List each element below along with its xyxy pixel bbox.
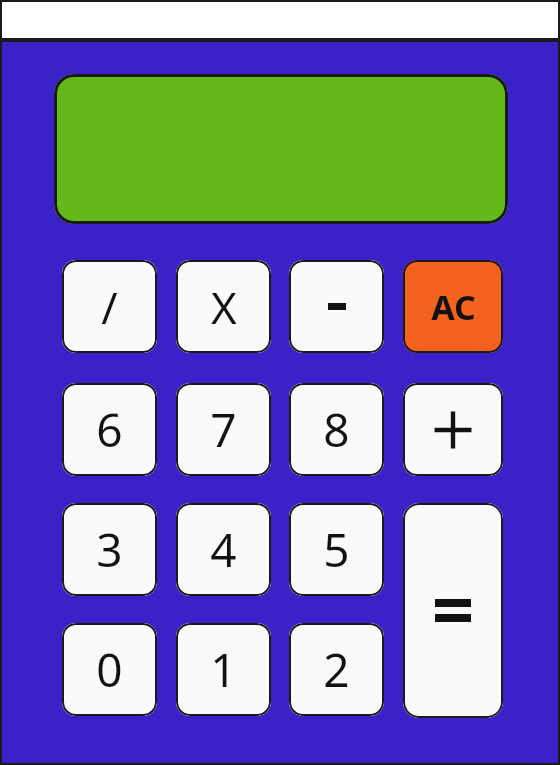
button[interactable]: 4 [176, 503, 271, 596]
button[interactable]: AC [403, 260, 503, 353]
staticText: / [101, 277, 118, 337]
button[interactable]: 1 [176, 623, 271, 716]
staticText: 3 [96, 518, 123, 581]
staticText: 7 [210, 398, 237, 461]
button[interactable]: 7 [176, 383, 271, 476]
button[interactable]: Plus [403, 383, 503, 476]
button[interactable]: Minus [289, 260, 384, 353]
staticText: X [211, 277, 237, 337]
staticText: 2 [323, 638, 350, 701]
button[interactable]: 6 [62, 383, 157, 476]
staticText: 8 [323, 398, 350, 461]
staticText: 4 [210, 518, 237, 581]
button[interactable]: 3 [62, 503, 157, 596]
staticText: 1 [210, 638, 237, 701]
staticText: 5 [323, 518, 350, 581]
button[interactable]: 8 [289, 383, 384, 476]
button[interactable]: 5 [289, 503, 384, 596]
staticText: 0 [96, 638, 123, 701]
button[interactable]: 0 [62, 623, 157, 716]
button[interactable]: X [176, 260, 271, 353]
button[interactable]: 2 [289, 623, 384, 716]
button[interactable]: Equals [403, 503, 503, 718]
button[interactable] [54, 74, 508, 224]
staticText: AC [431, 284, 476, 330]
button[interactable]: / [62, 260, 157, 353]
staticText: 6 [96, 398, 123, 461]
